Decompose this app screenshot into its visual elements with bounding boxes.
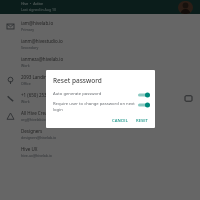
staticText: Require user to change password on next … xyxy=(53,101,135,113)
staticText: Hive UX xyxy=(21,146,38,152)
button[interactable]: Require user to change password on next … xyxy=(53,101,150,113)
staticText: Hive • Active xyxy=(21,1,44,6)
button[interactable]: Profile photo xyxy=(178,1,193,14)
staticText: org@hivelab.io xyxy=(21,117,46,122)
staticText: designers@hivelab.io xyxy=(21,135,57,140)
staticText: Auto generate password xyxy=(53,91,135,97)
button[interactable]: ianmeza@hivelab.io xyxy=(0,53,200,71)
staticText: ianm@hivestudio.io xyxy=(21,38,63,44)
staticText: 2093 Landing Way xyxy=(21,74,60,80)
button[interactable]: All Hive Creatives xyxy=(0,107,200,125)
button[interactable]: Hive UX xyxy=(0,143,200,161)
button[interactable]: 2093 Landing Way xyxy=(0,71,200,89)
staticText: Primary xyxy=(21,27,34,32)
staticText: All Hive Creatives xyxy=(21,110,58,116)
staticText: Secondary xyxy=(21,45,39,50)
button[interactable]: Auto generate password xyxy=(53,91,150,98)
staticText: iam@hivelab.io xyxy=(21,20,54,26)
button[interactable]: RESET xyxy=(134,117,150,125)
staticText: RESET xyxy=(136,118,148,124)
staticText: Work xyxy=(21,99,30,104)
button[interactable]: Send email xyxy=(176,89,200,107)
staticText: +1 (650) 253-0000 xyxy=(21,92,59,98)
staticText: Reset password xyxy=(53,76,102,85)
button[interactable]: +1 (650) 253-0000 xyxy=(0,89,200,107)
staticText: Last signed in Aug 10 xyxy=(21,7,57,12)
staticText: CANCEL xyxy=(112,118,128,124)
button[interactable]: ianm@hivestudio.io xyxy=(0,35,200,53)
staticText: ianmeza@hivelab.io xyxy=(21,56,64,62)
staticText: Office xyxy=(21,81,31,86)
staticText: Work xyxy=(21,63,30,68)
button[interactable]: Designers xyxy=(0,125,200,143)
button[interactable]: iam@hivelab.io xyxy=(0,17,200,35)
staticText: Designers xyxy=(21,128,43,134)
button[interactable]: CANCEL xyxy=(110,117,130,125)
staticText: hive-ux@hivelab.io xyxy=(21,153,52,158)
